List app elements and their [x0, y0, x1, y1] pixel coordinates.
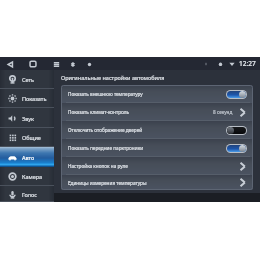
button[interactable]: Камера — [0, 167, 54, 186]
staticText: 12:27 — [239, 59, 256, 68]
staticText: Звук — [22, 115, 34, 122]
staticText: Единицы измерения температуры — [68, 180, 147, 186]
staticText: Оригинальные настройки автомобиля — [61, 74, 165, 81]
staticText: 8 секунд — [213, 109, 233, 115]
button[interactable]: Авто — [0, 147, 54, 167]
staticText: Авто — [22, 154, 35, 161]
button[interactable]: Показать климат-контроль — [61, 103, 253, 121]
button[interactable]: Back — [5, 59, 15, 69]
button[interactable]: Switch on — [227, 145, 246, 152]
button[interactable]: Bluetooth — [67, 59, 77, 69]
staticText: Настройка кнопок на руле — [68, 163, 128, 169]
button[interactable]: Показать — [0, 89, 54, 108]
button[interactable]: Switch off — [227, 127, 246, 134]
button[interactable]: Звук — [0, 108, 54, 128]
button[interactable]: Показать внешнюю температуру — [61, 85, 253, 103]
staticText: Показать внешнюю температуру — [68, 91, 143, 97]
button[interactable]: Menu — [51, 59, 61, 69]
staticText: Сеть — [22, 76, 35, 83]
button[interactable]: Голос — [0, 186, 54, 202]
button[interactable]: Battery — [201, 59, 211, 69]
staticText: Показать передние парктроники — [68, 145, 144, 151]
button[interactable]: Показать передние парктроники — [61, 139, 253, 157]
button[interactable]: Настройка кнопок на руле — [61, 157, 253, 175]
button[interactable]: Notification — [84, 59, 94, 69]
button[interactable]: Общие — [0, 128, 54, 147]
staticText: Показать климат-контроль — [68, 109, 130, 115]
button[interactable]: Signal — [215, 59, 225, 69]
button[interactable]: Switch on — [227, 91, 246, 98]
staticText: Камера — [22, 173, 43, 180]
button[interactable]: Отключить отображение дверей — [61, 121, 253, 139]
button[interactable]: Сеть — [0, 70, 54, 89]
staticText: Показать — [22, 95, 47, 102]
staticText: Отключить отображение дверей — [68, 127, 143, 133]
button[interactable]: Home — [28, 59, 38, 69]
button[interactable]: Единицы измерения температуры — [61, 175, 253, 190]
staticText: Голос — [22, 191, 38, 198]
staticText: Общие — [22, 134, 41, 141]
button[interactable]: Wi-Fi — [227, 59, 237, 69]
